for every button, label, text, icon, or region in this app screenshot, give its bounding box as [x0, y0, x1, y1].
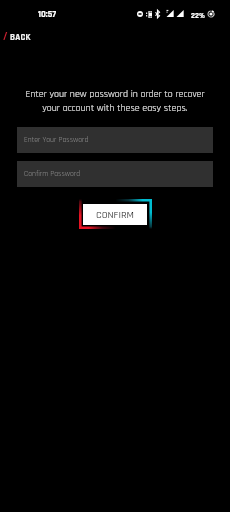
button[interactable]: Confirm Password: [17, 161, 213, 187]
staticText: 10:57: [38, 9, 57, 20]
button[interactable]: Back: [2, 28, 32, 46]
button[interactable]: CONFIRM: [83, 204, 147, 225]
staticText: /: [3, 30, 8, 44]
staticText: BACK: [10, 32, 31, 43]
button[interactable]: Enter Your Password: [17, 127, 213, 153]
staticText: Enter your new password in order to reco…: [21, 88, 209, 114]
staticText: 22%: [191, 11, 205, 21]
staticText: Confirm Password: [24, 169, 81, 179]
staticText: Enter Your Password: [24, 135, 89, 145]
staticText: CONFIRM: [96, 208, 134, 221]
